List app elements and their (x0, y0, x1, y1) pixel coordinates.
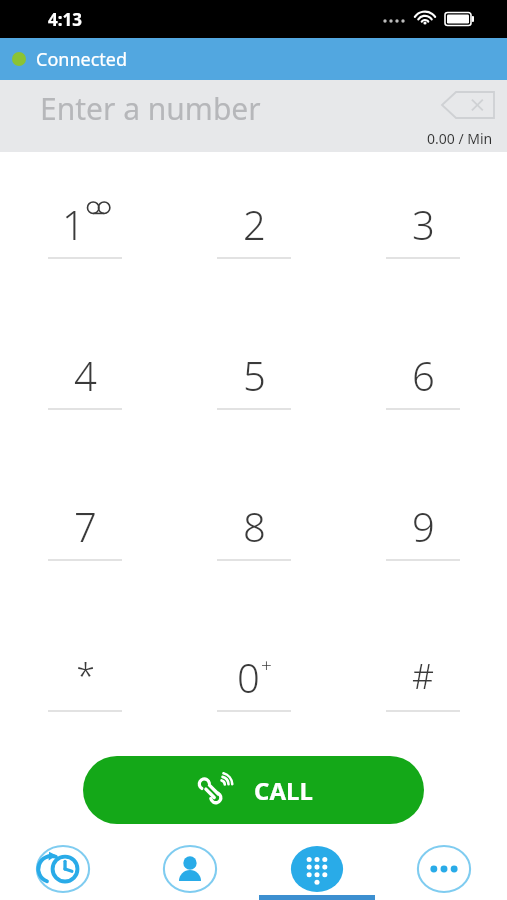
staticText: 1 (62, 197, 85, 249)
staticText: Enter a number (40, 88, 261, 129)
staticText: 7 (74, 499, 97, 551)
staticText: * (76, 653, 95, 699)
staticText: 4:13 (48, 8, 82, 31)
button[interactable]: 4 (0, 303, 169, 454)
staticText: Connected (36, 47, 128, 72)
staticText: CALL (254, 774, 313, 807)
button[interactable]: CALL (83, 756, 424, 824)
staticText: 9 (412, 499, 435, 551)
button[interactable]: Keypad (253, 838, 380, 900)
other: Backspace (442, 92, 494, 118)
staticText: 5 (243, 348, 266, 400)
staticText: 4 (74, 348, 97, 400)
staticText: 2 (243, 197, 266, 249)
button[interactable]: Enter a number (0, 80, 507, 152)
button[interactable]: 0 (169, 605, 338, 756)
button[interactable]: Recents (0, 838, 126, 900)
button[interactable]: More (380, 838, 507, 900)
button[interactable]: Connected (0, 38, 507, 80)
button[interactable]: 1 (0, 152, 169, 303)
button[interactable]: 6 (338, 303, 507, 454)
button[interactable]: Contacts (126, 838, 253, 900)
button[interactable]: 8 (169, 454, 338, 605)
button[interactable]: 7 (0, 454, 169, 605)
staticText: 0 (237, 650, 260, 702)
staticText: # (412, 653, 434, 699)
staticText: 0.00 / Min (427, 129, 493, 148)
staticText: 8 (243, 499, 266, 551)
button[interactable]: * (0, 605, 169, 756)
staticText: 6 (412, 348, 435, 400)
button[interactable]: 2 (169, 152, 338, 303)
button[interactable]: 9 (338, 454, 507, 605)
button[interactable]: 3 (338, 152, 507, 303)
staticText: 3 (412, 197, 435, 249)
staticText: + (261, 652, 272, 678)
button[interactable]: 5 (169, 303, 338, 454)
button[interactable]: # (338, 605, 507, 756)
